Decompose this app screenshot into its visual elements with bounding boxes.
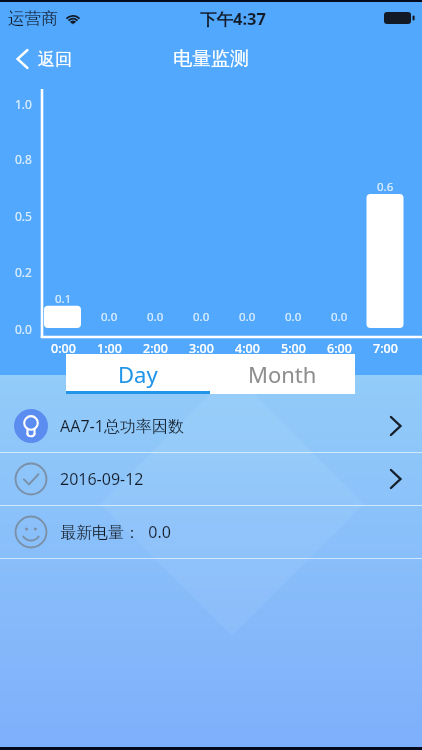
staticText: Month — [248, 359, 317, 389]
staticText: 0.6 — [377, 179, 394, 195]
staticText: 0.0 — [101, 309, 118, 325]
button[interactable]: 2016-09-12 — [0, 453, 422, 505]
staticText: 0:00 — [51, 340, 76, 357]
staticText: 最新电量： 0.0 — [60, 521, 171, 543]
staticText: 0.5 — [15, 208, 32, 224]
staticText: 电量监测 — [173, 47, 249, 71]
staticText: AA7-1总功率因数 — [60, 415, 184, 437]
staticText: 0.0 — [239, 309, 256, 325]
staticText: 0.0 — [285, 309, 302, 325]
staticText: 0.2 — [15, 264, 32, 280]
staticText: 运营商 — [8, 8, 58, 29]
staticText: 0.0 — [147, 309, 164, 325]
staticText: 0.1 — [55, 291, 72, 307]
button[interactable]: Day — [66, 354, 210, 394]
staticText: 2:00 — [143, 340, 168, 357]
staticText: 返回 — [38, 49, 72, 70]
button[interactable]: Month — [210, 354, 355, 394]
staticText: 下午4:37 — [200, 7, 266, 30]
staticText: 1:00 — [97, 340, 122, 357]
staticText: 0.0 — [331, 309, 348, 325]
staticText: 0.0 — [15, 321, 32, 337]
button[interactable]: 最新电量： 0.0 — [0, 506, 422, 558]
button[interactable]: 返回 — [0, 40, 90, 78]
staticText: Day — [118, 359, 158, 389]
button[interactable]: AA7-1总功率因数 — [0, 400, 422, 452]
staticText: 4:00 — [235, 340, 260, 357]
staticText: 3:00 — [189, 340, 214, 357]
staticText: 7:00 — [373, 340, 398, 357]
staticText: 1.0 — [15, 96, 32, 112]
staticText: 0.8 — [15, 151, 32, 167]
staticText: 5:00 — [281, 340, 306, 357]
staticText: 2016-09-12 — [60, 468, 144, 490]
staticText: 0.0 — [193, 309, 210, 325]
staticText: 6:00 — [327, 340, 352, 357]
